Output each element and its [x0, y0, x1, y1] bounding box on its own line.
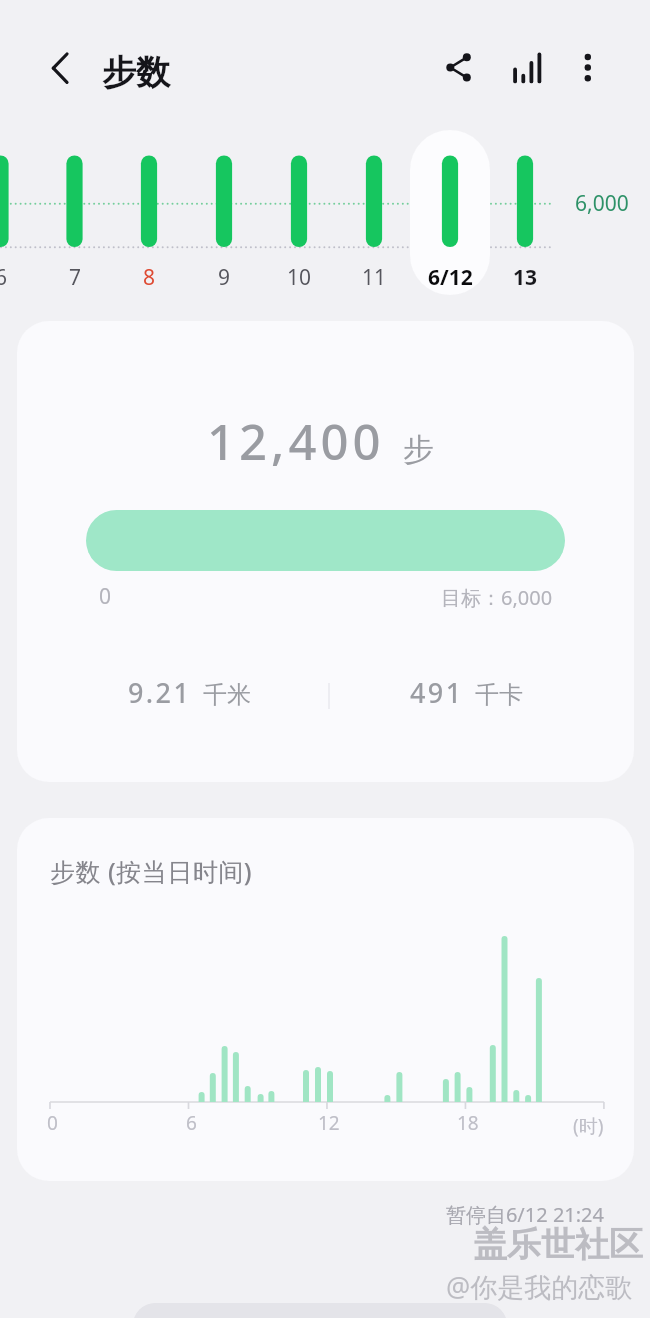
staticText: (时) — [573, 1113, 604, 1139]
staticText: 12,400 — [207, 408, 385, 475]
staticText: 0 — [47, 1110, 58, 1136]
staticText: 盖乐世社区 — [473, 1223, 643, 1266]
button[interactable]: 步数 (按当日时间) — [17, 818, 634, 1181]
staticText: @你是我的恋歌 — [446, 1268, 633, 1305]
staticText: 6/12 — [428, 263, 473, 292]
staticText: 8 — [143, 263, 156, 292]
staticText: 6 — [186, 1110, 197, 1136]
staticText: 13 — [513, 263, 538, 292]
staticText: 491 — [410, 674, 464, 711]
button[interactable]: Share — [435, 44, 483, 92]
staticText: 千卡 — [475, 680, 523, 710]
staticText: 6,000 — [575, 189, 629, 218]
staticText: 步 — [403, 430, 434, 469]
staticText: 9 — [218, 263, 231, 292]
staticText: 7 — [69, 263, 82, 292]
staticText: 步数 (按当日时间) — [50, 854, 253, 888]
button[interactable] — [410, 130, 490, 295]
staticText: 千米 — [203, 680, 251, 710]
staticText: 步数 — [102, 51, 170, 94]
staticText: 9.21 — [128, 674, 192, 711]
button[interactable]: View chart — [503, 44, 551, 92]
staticText: 0 — [99, 582, 112, 611]
staticText: 6 — [0, 263, 8, 292]
staticText: 12 — [318, 1110, 340, 1136]
staticText: 11 — [362, 263, 387, 292]
button[interactable]: More options — [564, 44, 612, 92]
staticText: 目标：6,000 — [441, 584, 553, 611]
staticText: 暂停自6/12 21:24 — [0, 1201, 604, 1228]
button[interactable]: Back — [30, 45, 78, 93]
button[interactable]: 12,400 — [17, 321, 634, 782]
staticText: 18 — [457, 1110, 479, 1136]
staticText: 10 — [287, 263, 312, 292]
